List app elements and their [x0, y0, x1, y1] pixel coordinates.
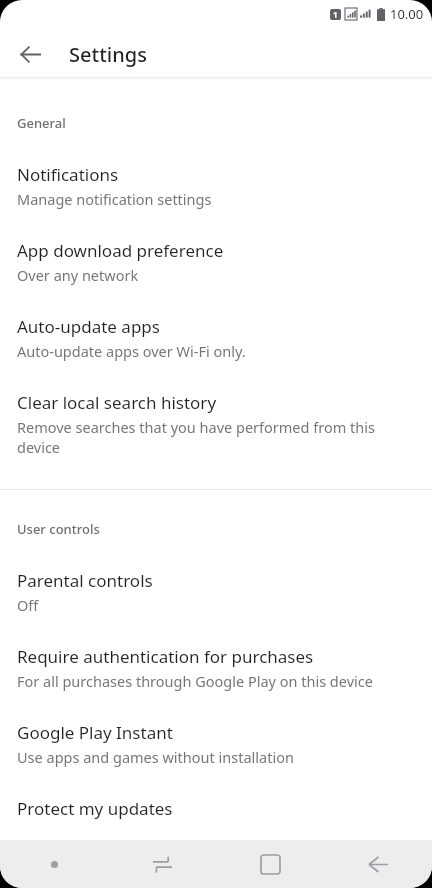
staticText: App download preference: [17, 239, 224, 262]
button[interactable]: Recents: [108, 840, 216, 888]
button[interactable]: Home: [216, 840, 324, 888]
staticText: Clear local search history: [17, 391, 217, 414]
staticText: Auto-update apps: [17, 315, 160, 338]
staticText: Require authentication for purchases: [17, 645, 314, 668]
button[interactable]: Auto-update apps: [0, 315, 432, 361]
staticText: For all purchases through Google Play on…: [17, 671, 373, 691]
staticText: 1: [333, 9, 338, 20]
button[interactable]: Back: [324, 840, 432, 888]
button[interactable]: Google Play Instant: [0, 721, 432, 767]
staticText: Protect my updates: [17, 797, 173, 820]
button[interactable]: Protect my updates: [0, 797, 432, 820]
staticText: Use apps and games without installation: [17, 747, 294, 767]
staticText: Auto-update apps over Wi-Fi only.: [17, 341, 246, 361]
staticText: 10.00: [390, 5, 424, 23]
button[interactable]: Require authentication for purchases: [0, 645, 432, 691]
staticText: Notifications: [17, 163, 119, 186]
staticText: Off: [17, 595, 39, 615]
staticText: Manage notification settings: [17, 189, 212, 209]
staticText: General: [17, 114, 66, 132]
staticText: Parental controls: [17, 569, 153, 592]
staticText: Settings: [69, 41, 147, 68]
staticText: Google Play Instant: [17, 721, 173, 744]
button[interactable]: Clear local search history: [0, 391, 432, 458]
staticText: User controls: [17, 520, 100, 538]
button[interactable]: Notifications: [0, 163, 432, 209]
staticText: Over any network: [17, 265, 139, 285]
button[interactable]: App download preference: [0, 239, 432, 285]
staticText: Remove searches that you have performed …: [17, 417, 412, 458]
button[interactable]: Parental controls: [0, 569, 432, 615]
button[interactable]: Back: [10, 34, 50, 74]
